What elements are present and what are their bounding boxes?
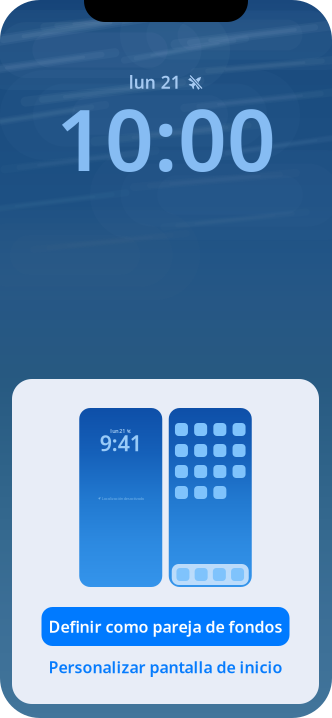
staticText: 10:00 [56,81,276,195]
staticText: Personalizar pantalla de inicio [48,656,282,678]
staticText: Localización desactivada [102,496,144,501]
staticText: 9:41 [100,429,142,457]
button[interactable]: Definir como pareja de fondos [41,607,289,646]
staticText: Definir como pareja de fondos [48,616,282,637]
button[interactable]: Personalizar pantalla de inicio [41,657,289,677]
staticText: lun 21 [129,70,181,93]
staticText: lun 21 [110,427,125,435]
